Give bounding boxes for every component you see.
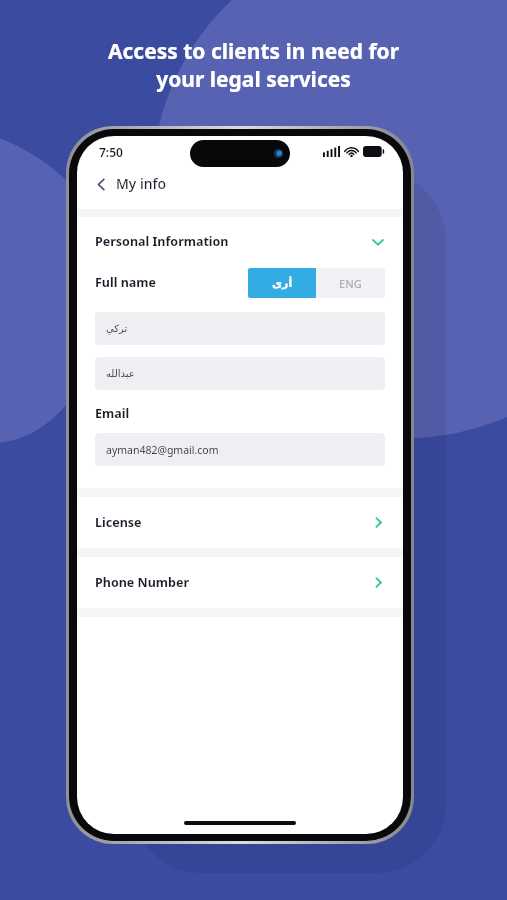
staticText: ENG: [339, 276, 362, 291]
button[interactable]: ayman482@gmail.com: [95, 433, 385, 466]
button[interactable]: License: [77, 497, 403, 548]
staticText: Access to clients in need for your legal…: [20, 37, 487, 93]
button[interactable]: Personal Information: [77, 217, 403, 266]
staticText: Phone Number: [95, 574, 372, 591]
button[interactable]: أرى: [248, 268, 316, 298]
staticText: My info: [116, 174, 166, 193]
button[interactable]: Back: [90, 173, 112, 195]
button[interactable]: Phone Number: [77, 557, 403, 608]
staticText: أرى: [272, 277, 293, 290]
button[interactable]: تركي: [95, 312, 385, 345]
staticText: License: [95, 514, 372, 531]
staticText: 7:50: [99, 144, 123, 160]
button[interactable]: ENG: [316, 268, 385, 298]
staticText: Email: [95, 405, 130, 422]
staticText: Personal Information: [95, 233, 371, 250]
staticText: عبدالله: [106, 368, 135, 380]
staticText: ayman482@gmail.com: [106, 443, 219, 457]
button[interactable]: عبدالله: [95, 357, 385, 390]
staticText: تركي: [106, 323, 128, 335]
staticText: Full name: [95, 274, 248, 291]
